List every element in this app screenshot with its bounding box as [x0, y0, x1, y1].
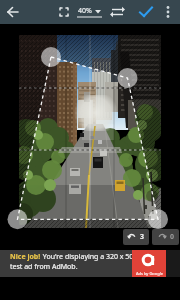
button[interactable]: 3: [123, 229, 149, 245]
button[interactable]: [107, 0, 128, 24]
button[interactable]: [2, 0, 24, 24]
button[interactable]: [159, 0, 177, 24]
button[interactable]: 40%: [75, 0, 105, 24]
staticText: 40%: [78, 6, 92, 16]
staticText: 3: [140, 232, 145, 242]
button[interactable]: Nice job!: [0, 250, 180, 277]
staticText: 0: [170, 232, 175, 242]
staticText: You're displaying a 320 x 50: [41, 252, 134, 262]
button[interactable]: 0: [152, 229, 179, 245]
button[interactable]: [53, 0, 75, 24]
staticText: Ads by Google: [136, 271, 163, 276]
staticText: Nice job!: [10, 252, 41, 262]
staticText: test ad from AdMob.: [10, 262, 78, 272]
button[interactable]: [135, 0, 157, 24]
